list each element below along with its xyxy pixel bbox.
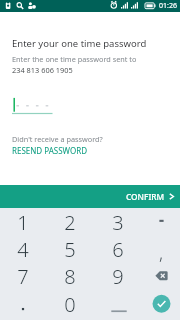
- button[interactable]: 5: [46, 235, 94, 263]
- staticText: 01:26: [159, 1, 177, 11]
- staticText: 8: [64, 263, 76, 290]
- staticText: CONFIRM: [126, 191, 165, 202]
- button[interactable]: Delete: [142, 262, 180, 290]
- staticText: 3: [112, 209, 124, 236]
- staticText: Enter your one time password: [12, 37, 147, 50]
- button[interactable]: ,: [142, 235, 180, 263]
- button[interactable]: 6: [94, 235, 142, 263]
- staticText: 2: [64, 209, 76, 236]
- staticText: 0: [64, 291, 76, 318]
- button[interactable]: [0, 290, 46, 318]
- staticText: Didn't receive a password?: [12, 134, 103, 144]
- staticText: 6: [112, 236, 124, 263]
- button[interactable]: 9: [94, 262, 142, 290]
- staticText: 9: [112, 263, 124, 290]
- button[interactable]: 7: [0, 262, 46, 290]
- staticText: Enter the one time password sent to: [12, 54, 137, 64]
- button[interactable]: [142, 208, 180, 236]
- staticText: 7: [17, 263, 29, 290]
- button[interactable]: 3: [94, 208, 142, 236]
- button[interactable]: [94, 290, 142, 318]
- staticText: 1: [17, 209, 29, 236]
- button[interactable]: RESEND PASSWORD: [12, 145, 88, 156]
- button[interactable]: CONFIRM: [0, 185, 180, 208]
- staticText: RESEND PASSWORD: [12, 145, 88, 156]
- button[interactable]: Confirm: [142, 290, 180, 318]
- staticText: 4: [17, 236, 29, 263]
- staticText: 234 813 606 1905: [12, 65, 73, 75]
- button[interactable]: 4: [0, 235, 46, 263]
- button[interactable]: 0: [46, 290, 94, 318]
- button[interactable]: 8: [46, 262, 94, 290]
- button[interactable]: 1: [0, 208, 46, 236]
- staticText: 5: [64, 236, 76, 263]
- button[interactable]: 2: [46, 208, 94, 236]
- staticText: ,: [159, 241, 164, 266]
